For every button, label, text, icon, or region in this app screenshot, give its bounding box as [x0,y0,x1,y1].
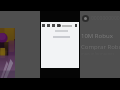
button[interactable]: Comprar Robux [81,43,120,51]
button[interactable]: Toolbar action [57,24,60,27]
button[interactable]: Robux balance [82,15,120,22]
staticText: 10M Robux [81,32,113,40]
